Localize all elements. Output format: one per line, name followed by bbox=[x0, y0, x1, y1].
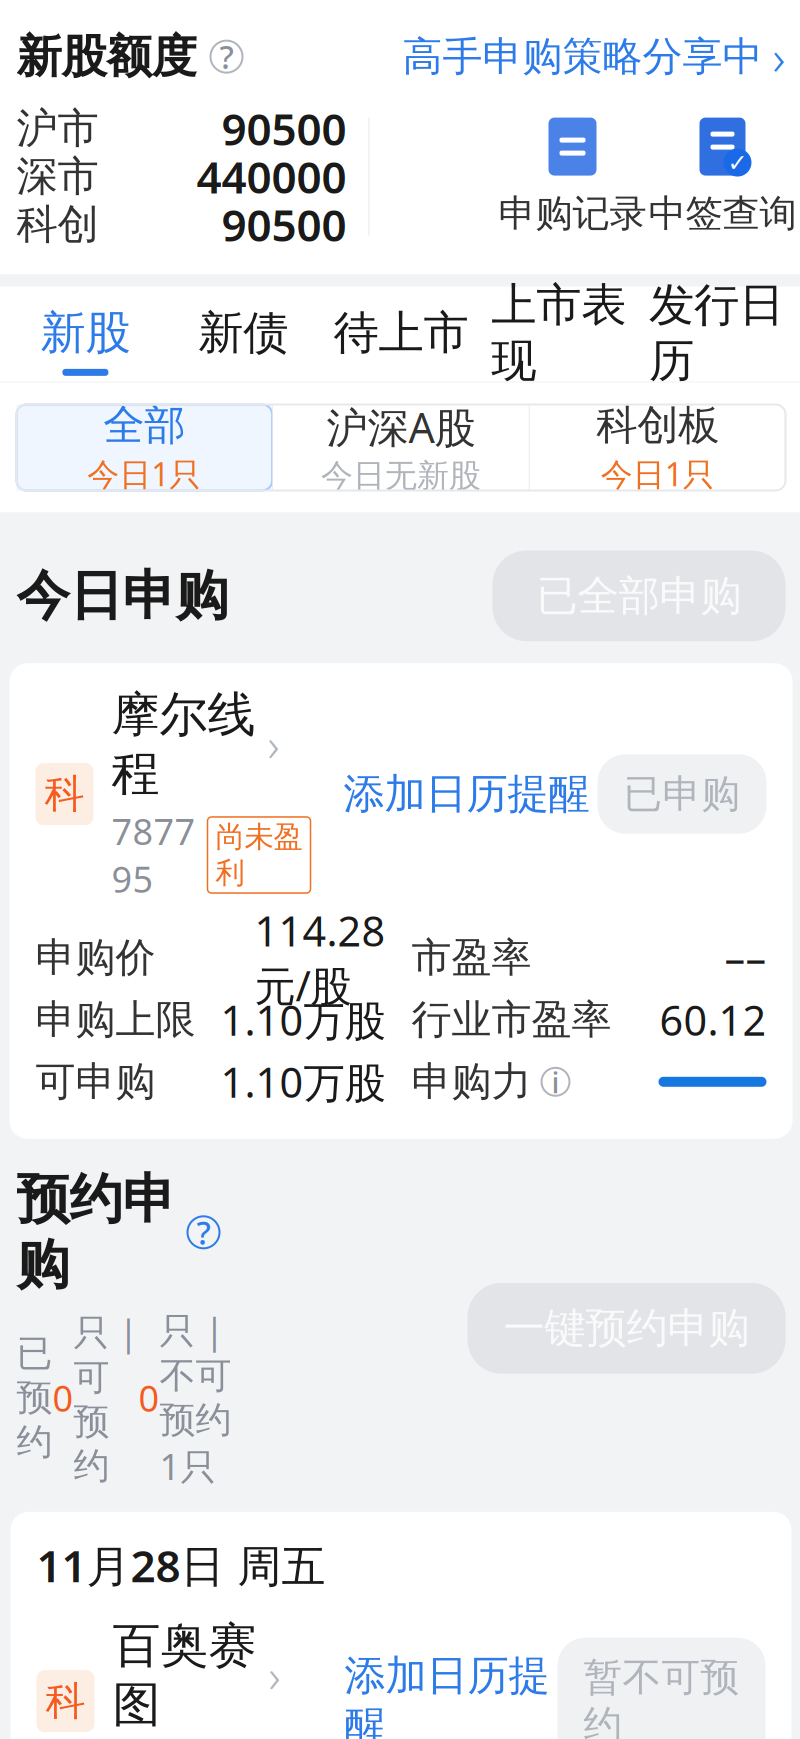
staticText: 深市 bbox=[16, 151, 98, 202]
staticText: 已预约 bbox=[16, 1331, 52, 1464]
button[interactable]: 已申购 bbox=[597, 754, 766, 834]
staticText: 440000 bbox=[196, 147, 346, 206]
staticText: 一键预约申购 bbox=[503, 1303, 749, 1354]
staticText: 今日无新股 bbox=[321, 456, 481, 496]
staticText: 沪市 bbox=[16, 103, 98, 154]
button[interactable]: 添加日历提醒 bbox=[344, 1650, 549, 1739]
staticText: 0 bbox=[52, 1374, 73, 1422]
staticText: 只 | 不可预约1只 bbox=[159, 1306, 231, 1490]
staticText: 申购力 bbox=[411, 1057, 531, 1106]
button[interactable]: 上市表现 bbox=[480, 265, 638, 404]
button[interactable]: 发行日历 bbox=[638, 265, 795, 404]
staticText: 只 | 可预约 bbox=[73, 1308, 138, 1488]
staticText: 114.28元/股 bbox=[254, 903, 385, 1013]
staticText: 787795 bbox=[111, 807, 195, 903]
staticText: › bbox=[267, 714, 279, 774]
button[interactable]: 科创板 bbox=[530, 404, 785, 490]
staticText: 科 bbox=[45, 1677, 85, 1726]
button[interactable]: 新股 bbox=[6, 293, 164, 376]
staticText: 添加日历提醒 bbox=[343, 769, 589, 819]
staticText: 60.12 bbox=[659, 992, 766, 1047]
staticText: 上市表现 bbox=[491, 277, 626, 389]
staticText: 90500 bbox=[221, 195, 346, 254]
staticText: 申购记录 bbox=[498, 191, 646, 236]
button[interactable]: 百奥赛图 bbox=[94, 1616, 344, 1739]
staticText: 新债 bbox=[198, 305, 288, 361]
staticText: 预约申购 bbox=[16, 1167, 175, 1298]
staticText: 新股额度 bbox=[16, 29, 196, 84]
staticText: 行业市盈率 bbox=[411, 995, 611, 1044]
button[interactable]: ✓ bbox=[647, 117, 797, 236]
staticText: 科 bbox=[44, 769, 84, 819]
staticText: 全部 bbox=[103, 400, 185, 451]
staticText: 科创 bbox=[16, 199, 98, 250]
button[interactable]: 沪深A股 bbox=[273, 404, 529, 490]
staticText: 发行日历 bbox=[649, 277, 784, 389]
button[interactable]: 申购记录 bbox=[497, 117, 647, 236]
staticText: ? bbox=[196, 1211, 210, 1254]
staticText: 今日申购 bbox=[16, 563, 228, 629]
staticText: 0 bbox=[138, 1374, 159, 1422]
staticText: › bbox=[772, 25, 785, 88]
staticText: 中签查询 bbox=[648, 191, 796, 236]
staticText: ✓ bbox=[727, 149, 747, 176]
staticText: i bbox=[551, 1062, 559, 1101]
staticText: 已全部申购 bbox=[536, 570, 741, 621]
staticText: 1.10万股 bbox=[220, 1054, 385, 1109]
staticText: 市盈率 bbox=[411, 933, 531, 982]
staticText: 今日1只 bbox=[87, 453, 201, 495]
staticText: 今日1只 bbox=[601, 453, 715, 495]
staticText: 科创板 bbox=[596, 400, 719, 451]
button[interactable]: 预约申购说明 bbox=[187, 1216, 219, 1248]
staticText: › bbox=[268, 1645, 280, 1705]
staticText: 90500 bbox=[221, 99, 346, 158]
staticText: –– bbox=[724, 930, 766, 985]
button[interactable]: 已全部申购 bbox=[492, 550, 785, 641]
staticText: 添加日历提醒 bbox=[344, 1650, 549, 1739]
button[interactable]: 一键预约申购 bbox=[467, 1283, 785, 1374]
button[interactable]: 高手申购策略分享中 bbox=[402, 25, 785, 88]
staticText: 高手申购策略分享中 bbox=[402, 32, 762, 81]
staticText: 可申购 bbox=[35, 1057, 155, 1106]
staticText: 百奥赛图 bbox=[112, 1616, 256, 1734]
staticText: 暂不可预约 bbox=[583, 1654, 739, 1739]
staticText: 申购价 bbox=[35, 933, 155, 982]
staticText: 尚未盈利 bbox=[215, 819, 302, 891]
staticText: 已申购 bbox=[623, 770, 740, 818]
staticText: 摩尔线程 bbox=[111, 685, 255, 803]
button[interactable]: 摩尔线程 bbox=[93, 685, 343, 903]
button[interactable]: 添加日历提醒 bbox=[343, 769, 589, 819]
staticText: 申购上限 bbox=[35, 995, 195, 1044]
button[interactable]: 额度说明 bbox=[210, 41, 242, 73]
button[interactable]: 全部 bbox=[16, 404, 272, 490]
staticText: 1.10万股 bbox=[220, 992, 385, 1047]
button[interactable]: 待上市 bbox=[322, 293, 480, 376]
staticText: ? bbox=[219, 35, 233, 78]
staticText: 沪深A股 bbox=[326, 399, 475, 454]
staticText: 待上市 bbox=[333, 305, 468, 361]
button[interactable]: 新债 bbox=[164, 293, 322, 376]
staticText: 11月28日 周五 bbox=[36, 1536, 325, 1594]
staticText: 新股 bbox=[40, 305, 130, 361]
button[interactable]: 暂不可预约 bbox=[557, 1638, 765, 1739]
